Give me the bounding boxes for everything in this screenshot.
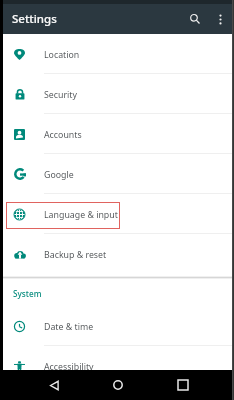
button[interactable]: Backup & reset (3, 234, 232, 274)
staticText: Security (44, 89, 78, 101)
staticText: Settings (12, 11, 57, 27)
staticText: Location (44, 49, 80, 61)
button[interactable]: Back (41, 372, 67, 398)
button[interactable]: Date & time (3, 306, 232, 346)
button[interactable]: Security (3, 74, 232, 114)
button[interactable]: Location (3, 34, 232, 74)
staticText: Backup & reset (44, 249, 107, 261)
button[interactable]: Google (3, 154, 232, 194)
staticText: Date & time (44, 321, 94, 333)
staticText: Google (44, 169, 74, 181)
button[interactable]: Recents (170, 372, 196, 398)
staticText: Accounts (44, 129, 82, 141)
button[interactable]: Accounts (3, 114, 232, 154)
staticText: System (13, 288, 42, 299)
button[interactable]: Language & input (3, 194, 232, 234)
staticText: Accessibility (44, 361, 94, 370)
button[interactable]: Accessibility (3, 346, 232, 370)
staticText: Language & input (44, 209, 118, 221)
button[interactable]: More options (209, 8, 231, 30)
button[interactable]: Search (184, 8, 206, 30)
button[interactable]: Home (105, 372, 131, 398)
